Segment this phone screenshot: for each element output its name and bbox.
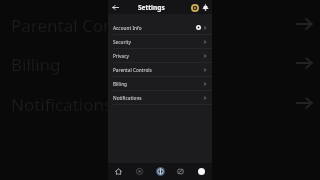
staticText: Settings bbox=[138, 3, 165, 12]
staticText: Notifications bbox=[11, 93, 113, 116]
button[interactable]: Profile bbox=[194, 164, 209, 179]
button[interactable]: Notifications bbox=[108, 91, 212, 105]
button[interactable]: Back bbox=[110, 2, 121, 13]
button[interactable]: Notifications bbox=[200, 2, 211, 13]
staticText: Billing bbox=[11, 53, 61, 76]
button[interactable]: Explore bbox=[132, 164, 147, 179]
button[interactable]: Privacy bbox=[108, 49, 212, 63]
button[interactable]: Security bbox=[108, 35, 212, 49]
button[interactable]: Account Info bbox=[108, 21, 212, 35]
button[interactable]: Library bbox=[173, 164, 188, 179]
staticText: Notifications bbox=[113, 95, 142, 101]
staticText: Privacy bbox=[113, 53, 130, 59]
button[interactable]: Home bbox=[111, 164, 126, 179]
staticText: Security bbox=[113, 39, 132, 45]
button[interactable]: Play bbox=[153, 164, 168, 179]
button[interactable]: Account bbox=[189, 2, 200, 13]
staticText: Account Info bbox=[113, 25, 142, 31]
staticText: Parental Contr bbox=[11, 14, 127, 37]
button[interactable]: Parental Controls bbox=[108, 63, 212, 77]
button[interactable]: Billing bbox=[108, 77, 212, 91]
staticText: Parental Controls bbox=[113, 67, 152, 73]
staticText: Billing bbox=[113, 81, 127, 87]
